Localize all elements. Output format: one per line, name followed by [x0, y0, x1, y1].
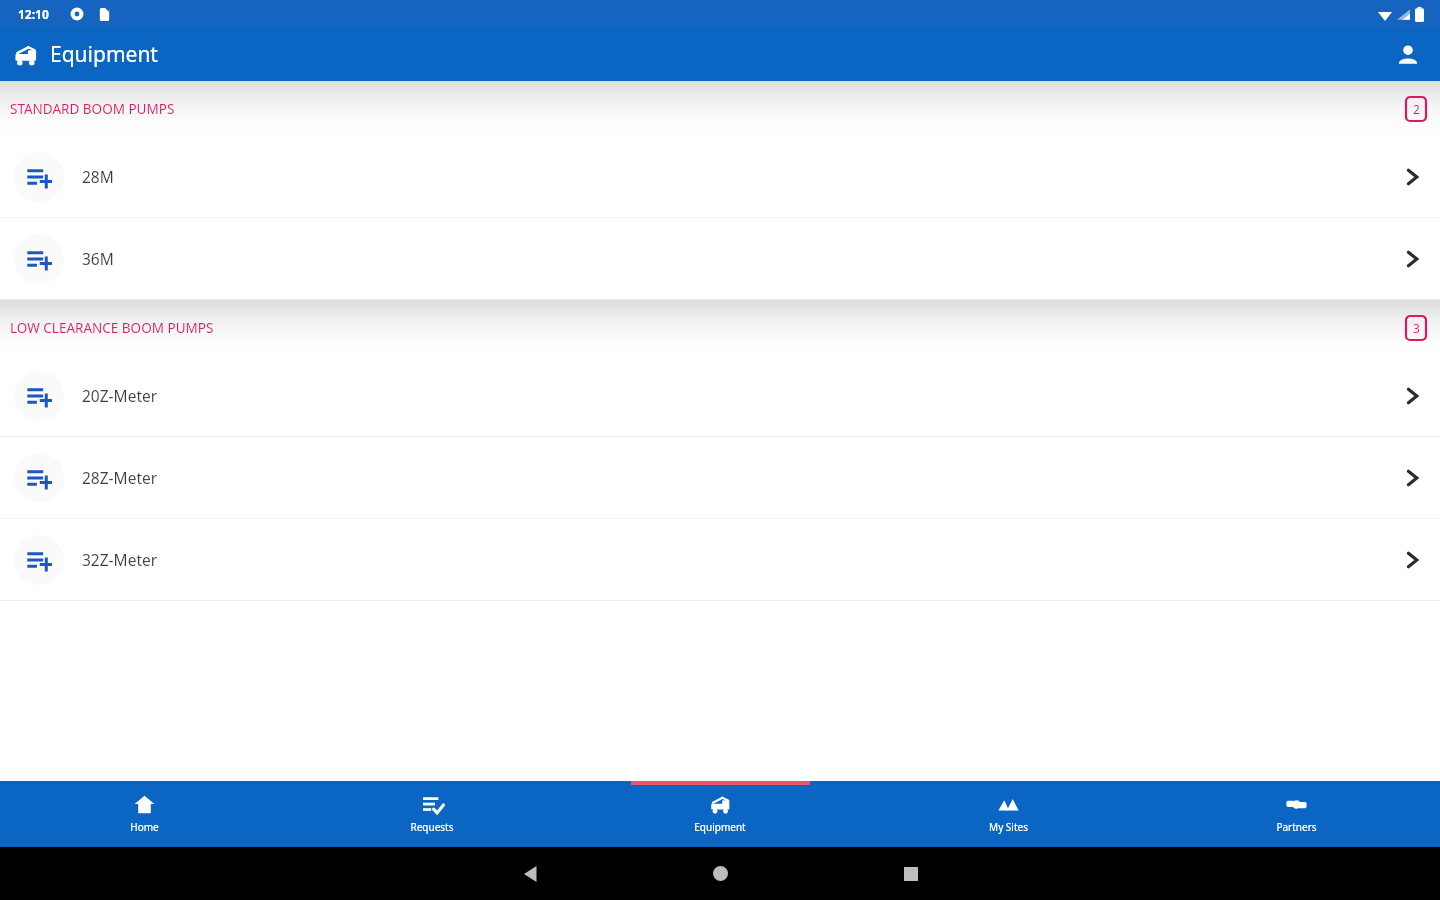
button[interactable]: 20Z-Meter — [0, 355, 1440, 436]
staticText: 2 — [1413, 101, 1420, 117]
staticText: My Sites — [989, 820, 1028, 834]
button[interactable]: 28M — [0, 136, 1440, 217]
staticText: 36M — [82, 248, 114, 269]
button[interactable]: Equipment — [576, 781, 864, 847]
button[interactable]: My Sites — [864, 781, 1152, 847]
staticText: 28Z-Meter — [82, 467, 158, 488]
button[interactable]: Requests — [288, 781, 576, 847]
other: Back — [524, 866, 540, 882]
staticText: 32Z-Meter — [82, 549, 158, 570]
button[interactable]: Partners — [1152, 781, 1440, 847]
staticText: 28M — [82, 166, 114, 187]
staticText: Equipment — [50, 40, 158, 69]
staticText: 20Z-Meter — [82, 385, 158, 406]
button[interactable]: 36M — [0, 218, 1440, 299]
staticText: 3 — [1413, 320, 1420, 336]
button[interactable]: 32Z-Meter — [0, 519, 1440, 600]
staticText: 12:10 — [18, 6, 49, 22]
button[interactable]: Count 3 — [1406, 316, 1426, 340]
button[interactable]: Home — [0, 781, 288, 847]
staticText: LOW CLEARANCE BOOM PUMPS — [10, 319, 214, 337]
staticText: Requests — [410, 820, 454, 834]
other: Home — [713, 866, 728, 881]
button[interactable]: 28Z-Meter — [0, 437, 1440, 518]
button[interactable]: Count 2 — [1406, 97, 1426, 121]
staticText: STANDARD BOOM PUMPS — [10, 100, 175, 118]
staticText: Home — [130, 820, 159, 834]
staticText: Equipment — [694, 820, 746, 834]
button[interactable]: Account — [1384, 31, 1432, 79]
staticText: Partners — [1276, 820, 1317, 834]
